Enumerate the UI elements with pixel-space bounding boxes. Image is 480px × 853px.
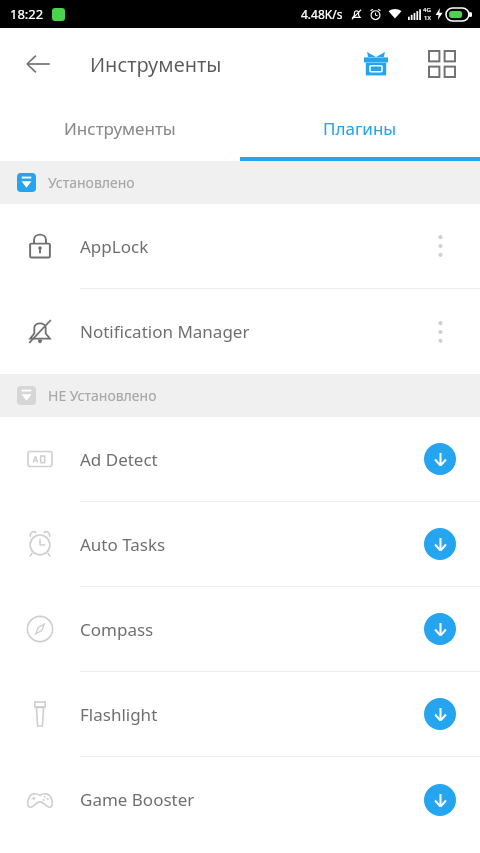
button[interactable]: Download Ad Detect [424, 443, 456, 475]
staticText: Flashlight [80, 703, 400, 726]
button[interactable]: Download Flashlight [424, 698, 456, 730]
staticText: Инструменты [90, 51, 222, 78]
staticText: 4.48K/s [301, 6, 343, 22]
staticText: AppLock [80, 235, 400, 258]
staticText: 4G [423, 6, 431, 14]
button[interactable]: Grid view [420, 42, 464, 86]
staticText: НЕ Установлено [48, 386, 157, 405]
button[interactable]: Download Auto Tasks [424, 528, 456, 560]
button[interactable]: Download Compass [424, 613, 456, 645]
button[interactable]: Плагины [240, 100, 480, 157]
button[interactable]: AppLock [0, 204, 480, 289]
button[interactable]: Download Game Booster [424, 784, 456, 816]
button[interactable]: Offers [354, 42, 398, 86]
staticText: Установлено [48, 173, 135, 192]
staticText: Auto Tasks [80, 533, 400, 556]
button[interactable]: Auto Tasks [0, 502, 480, 587]
button[interactable]: Back [16, 42, 60, 86]
staticText: 1X [424, 14, 431, 22]
button[interactable]: More options [420, 312, 460, 352]
button[interactable]: Инструменты [0, 100, 240, 157]
button[interactable]: More options [420, 226, 460, 266]
button[interactable]: Ad Detect [0, 417, 480, 502]
button[interactable]: Notification Manager [0, 289, 480, 374]
staticText: Инструменты [64, 117, 176, 140]
staticText: 18:22 [10, 5, 44, 23]
staticText: Game Booster [80, 788, 400, 811]
staticText: Плагины [323, 117, 397, 140]
staticText: Compass [80, 618, 400, 641]
button[interactable]: Game Booster [0, 757, 480, 842]
staticText: Ad Detect [80, 448, 400, 471]
button[interactable]: Flashlight [0, 672, 480, 757]
button[interactable]: Compass [0, 587, 480, 672]
staticText: Notification Manager [80, 320, 400, 343]
